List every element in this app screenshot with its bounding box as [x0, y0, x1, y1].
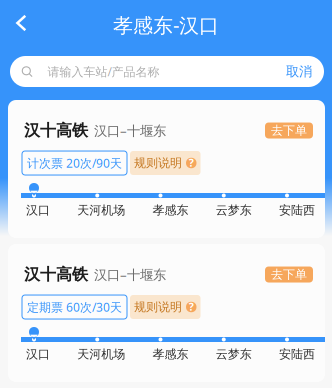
- staticText: 孝感东-汉口: [113, 12, 219, 38]
- staticText: 安陆西: [279, 203, 315, 218]
- staticText: 汉口–十堰东: [94, 266, 166, 283]
- staticText: 定期票 60次/30天: [27, 299, 122, 315]
- staticText: ?: [189, 155, 194, 170]
- staticText: 计次票 20次/90天: [27, 155, 122, 171]
- staticText: 请输入车站/产品名称: [47, 63, 159, 79]
- staticText: 去下单: [271, 123, 307, 138]
- button[interactable]: 规则说明: [130, 295, 200, 319]
- staticText: 云梦东: [216, 203, 252, 218]
- staticText: 汉十高铁: [24, 265, 88, 284]
- staticText: 安陆西: [279, 347, 315, 362]
- staticText: 规则说明: [134, 156, 182, 170]
- staticText: 孝感东: [152, 347, 188, 362]
- staticText: 天河机场: [77, 203, 125, 218]
- staticText: 汉十高铁: [24, 121, 88, 140]
- button[interactable]: 去下单: [265, 122, 313, 138]
- staticText: 汉口: [26, 203, 50, 218]
- staticText: 天河机场: [77, 347, 125, 362]
- button[interactable]: 去下单: [265, 266, 313, 282]
- staticText: 汉口: [26, 347, 50, 362]
- staticText: 云梦东: [216, 347, 252, 362]
- staticText: 汉口–十堰东: [94, 122, 166, 139]
- button[interactable]: Back: [0, 5, 41, 40]
- button[interactable]: 取消: [276, 56, 312, 87]
- staticText: 取消: [286, 63, 312, 80]
- staticText: 规则说明: [134, 300, 182, 314]
- staticText: 去下单: [271, 267, 307, 282]
- staticText: ?: [189, 299, 194, 314]
- button[interactable]: 规则说明: [130, 151, 200, 175]
- staticText: 孝感东: [152, 203, 188, 218]
